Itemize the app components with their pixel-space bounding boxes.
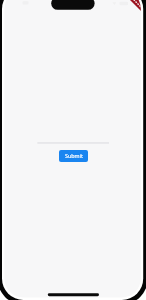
button[interactable]: Submit — [59, 150, 88, 162]
staticText: Submit — [65, 152, 83, 159]
